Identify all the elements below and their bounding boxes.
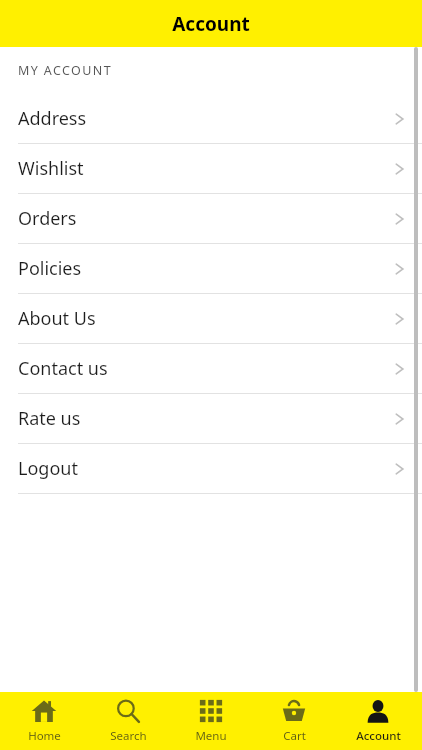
staticText: Home: [28, 728, 61, 744]
staticText: Orders: [18, 206, 392, 231]
staticText: MY ACCOUNT: [18, 62, 113, 79]
button[interactable]: Policies: [0, 244, 422, 293]
button[interactable]: Orders: [0, 194, 422, 243]
staticText: Address: [18, 106, 392, 131]
button[interactable]: Menu: [172, 692, 250, 750]
staticText: Menu: [195, 728, 227, 744]
staticText: Logout: [18, 456, 392, 481]
staticText: Account: [356, 728, 401, 744]
button[interactable]: Rate us: [0, 394, 422, 443]
button[interactable]: Wishlist: [0, 144, 422, 193]
staticText: Wishlist: [18, 156, 392, 181]
staticText: Rate us: [18, 406, 392, 431]
button[interactable]: Search: [89, 692, 167, 750]
staticText: Cart: [283, 728, 306, 744]
button[interactable]: Address: [0, 94, 422, 143]
staticText: Contact us: [18, 356, 392, 381]
staticText: About Us: [18, 306, 392, 331]
staticText: Search: [110, 728, 147, 744]
button[interactable]: Account: [339, 692, 417, 750]
button[interactable]: About Us: [0, 294, 422, 343]
staticText: Account: [172, 11, 250, 37]
staticText: Policies: [18, 256, 392, 281]
button[interactable]: Home: [5, 692, 83, 750]
button[interactable]: Contact us: [0, 344, 422, 393]
button[interactable]: Logout: [0, 444, 422, 493]
button[interactable]: Cart: [255, 692, 333, 750]
